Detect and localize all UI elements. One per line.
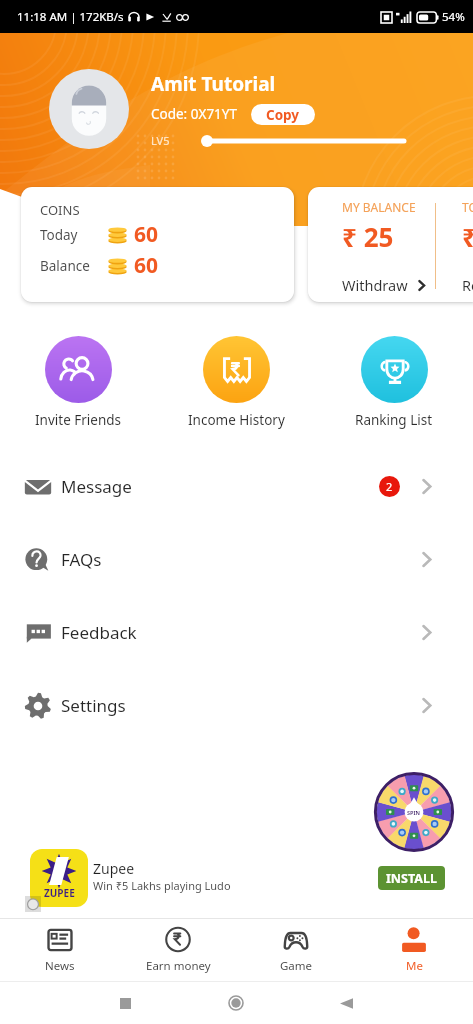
staticText: Zupee — [93, 859, 135, 878]
staticText: Amit Tutorial — [151, 71, 276, 97]
staticText: 60 — [134, 251, 159, 280]
staticText: Settings — [61, 694, 126, 717]
staticText: SPIN — [407, 809, 421, 816]
button[interactable]: Invite Friends — [0, 336, 157, 429]
staticText: Income History — [188, 411, 285, 429]
button[interactable]: Copy — [251, 104, 315, 125]
button[interactable]: Me — [355, 918, 473, 982]
staticText: ZUPEE — [44, 886, 75, 900]
button[interactable]: Feedback — [0, 596, 473, 669]
staticText: COINS — [40, 201, 80, 219]
button[interactable]: Settings — [0, 669, 473, 742]
staticText: 11:18 AM | 172KB/s — [17, 9, 124, 25]
button[interactable]: Message — [0, 450, 473, 523]
button[interactable]: News — [0, 918, 119, 982]
staticText: Game — [280, 958, 313, 974]
staticText: News — [45, 958, 75, 974]
staticText: INSTALL — [386, 870, 437, 887]
button[interactable]: Income History — [157, 336, 315, 429]
staticText: 54% — [442, 9, 465, 25]
button[interactable]: INSTALL — [378, 866, 445, 890]
staticText: Message — [61, 475, 132, 498]
staticText: Me — [406, 958, 423, 974]
staticText: ₹ — [462, 219, 473, 254]
staticText: Copy — [266, 106, 300, 124]
staticText: TO — [462, 199, 473, 215]
staticText: Ranking List — [355, 411, 433, 429]
staticText: Invite Friends — [35, 411, 122, 429]
button[interactable]: Earn money — [119, 918, 237, 982]
staticText: Today — [40, 226, 78, 244]
staticText: Re — [462, 275, 473, 295]
staticText: Win ₹5 Lakhs playing Ludo — [93, 878, 231, 893]
button[interactable]: MY BALANCE — [308, 187, 473, 302]
staticText: MY BALANCE — [342, 199, 416, 215]
staticText: LV5 — [151, 133, 170, 148]
staticText: Code: 0X71YT — [151, 105, 237, 123]
staticText: Feedback — [61, 621, 137, 644]
button[interactable]: COINS — [21, 187, 294, 302]
staticText: Balance — [40, 257, 90, 275]
button[interactable]: Spin wheel — [374, 772, 454, 852]
staticText: ₹ 25 — [342, 219, 394, 254]
button[interactable]: FAQs — [0, 523, 473, 596]
staticText: Earn money — [146, 958, 211, 974]
staticText: 2 — [386, 479, 393, 494]
button[interactable]: Ranking List — [315, 336, 473, 429]
staticText: Withdraw — [342, 275, 408, 295]
staticText: FAQs — [61, 548, 102, 571]
staticText: 60 — [134, 220, 159, 249]
button[interactable]: Game — [237, 918, 355, 982]
